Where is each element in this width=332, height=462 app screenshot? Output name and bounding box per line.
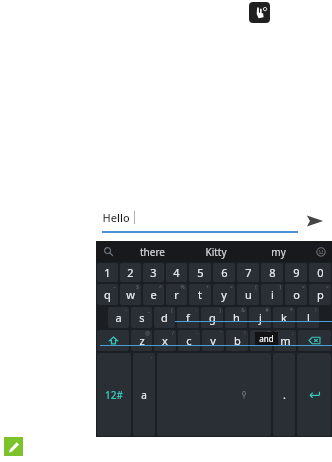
staticText: ! (244, 330, 246, 337)
staticText: [ (255, 284, 257, 291)
button[interactable]: ' (202, 330, 224, 351)
button[interactable]: _ (131, 307, 152, 328)
button[interactable]: ? (250, 330, 272, 351)
staticText: k (281, 310, 287, 325)
button[interactable]: ! (226, 330, 248, 351)
button[interactable]: 9 (285, 263, 307, 282)
button[interactable]: Kitty (184, 241, 247, 262)
staticText: ! (315, 307, 317, 314)
staticText: ? (267, 330, 270, 337)
staticText: 4 (173, 265, 180, 280)
button[interactable]: + (189, 284, 211, 305)
button[interactable]: Search (96, 241, 120, 262)
button[interactable]: / (154, 330, 176, 351)
staticText: 8 (269, 265, 276, 280)
staticText: c (186, 333, 192, 348)
button[interactable]: : (177, 307, 199, 328)
staticText: m (280, 333, 291, 348)
button[interactable]: ( (154, 307, 175, 328)
button[interactable]: ~ (97, 284, 118, 305)
button[interactable]: 4 (166, 263, 187, 282)
button[interactable]: Backspace (298, 330, 331, 351)
button[interactable]: < (285, 284, 307, 305)
button[interactable]: * (273, 307, 295, 328)
staticText: . (283, 387, 286, 402)
staticText: 2 (127, 265, 134, 280)
button[interactable]: 3 (143, 263, 164, 282)
staticText: e (150, 287, 157, 302)
staticText: z (139, 333, 145, 348)
button[interactable]: = (213, 284, 235, 305)
button[interactable]: 5 (189, 263, 211, 282)
button[interactable]: 8 (261, 263, 283, 282)
button[interactable]: & (225, 307, 247, 328)
staticText: + (206, 284, 209, 291)
button[interactable]: . (273, 353, 295, 436)
staticText: ] (279, 284, 281, 291)
button[interactable]: # (249, 307, 271, 328)
staticText: a (141, 388, 147, 402)
staticText: @ (145, 330, 150, 337)
button[interactable]: 1 (97, 263, 118, 282)
staticText: there (140, 245, 165, 259)
button[interactable]: Edit (4, 437, 23, 456)
button[interactable]: ^ (143, 284, 164, 305)
button[interactable]: , (133, 353, 155, 436)
staticText: and (259, 333, 274, 344)
button[interactable]: Shift (97, 330, 129, 351)
staticText: 12# (105, 388, 123, 402)
staticText: 9 (293, 265, 300, 280)
staticText: y (221, 287, 227, 302)
staticText: 3 (150, 265, 157, 280)
button[interactable]: $ (120, 284, 141, 305)
staticText: x (162, 333, 168, 348)
button[interactable]: ] (261, 284, 283, 305)
button[interactable]: ; (274, 330, 296, 351)
staticText: f (186, 310, 190, 325)
staticText: * (290, 307, 293, 314)
button[interactable]: Send (298, 202, 332, 240)
staticText: i (271, 287, 274, 302)
button[interactable]: 6 (213, 263, 235, 282)
staticText: h (233, 310, 240, 325)
staticText: = (230, 284, 233, 291)
button[interactable]: % (166, 284, 187, 305)
staticText: ; (292, 330, 294, 337)
button[interactable]: [ (237, 284, 259, 305)
button[interactable]: there (120, 241, 184, 262)
button[interactable]: and (100, 332, 332, 346)
staticText: $ (136, 284, 139, 291)
button[interactable]: 7 (237, 263, 259, 282)
staticText: < (302, 284, 305, 291)
button[interactable]: how (213, 332, 332, 346)
button[interactable]: > (309, 284, 331, 305)
staticText: ^ (159, 284, 162, 291)
staticText: , (151, 353, 153, 360)
button[interactable]: Enter (297, 353, 331, 436)
staticText: 0 (317, 265, 324, 280)
button[interactable]: 12# (97, 353, 131, 436)
staticText: w (126, 287, 135, 302)
staticText: ~ (113, 284, 116, 291)
staticText: 7 (245, 265, 252, 280)
button[interactable]: ! (297, 307, 319, 328)
button[interactable]: ) (201, 307, 223, 328)
button[interactable]: @ (131, 330, 152, 351)
staticText: 1 (104, 265, 111, 280)
button[interactable]: Touch pointer (249, 2, 270, 23)
button[interactable]: to (175, 308, 332, 322)
button[interactable]: 2 (120, 263, 141, 282)
button[interactable]: - (108, 307, 129, 328)
staticText: j (259, 310, 262, 325)
button[interactable]: Kitty (252, 332, 332, 346)
staticText: 5 (197, 265, 204, 280)
staticText: Kitty (205, 245, 227, 259)
button[interactable]: Emoji (310, 241, 332, 262)
button[interactable]: - (178, 330, 200, 351)
button[interactable]: my (247, 241, 310, 262)
staticText: p (317, 287, 324, 302)
staticText: t (198, 287, 202, 302)
button[interactable]: 0 (309, 263, 331, 282)
staticText: : (195, 307, 197, 314)
